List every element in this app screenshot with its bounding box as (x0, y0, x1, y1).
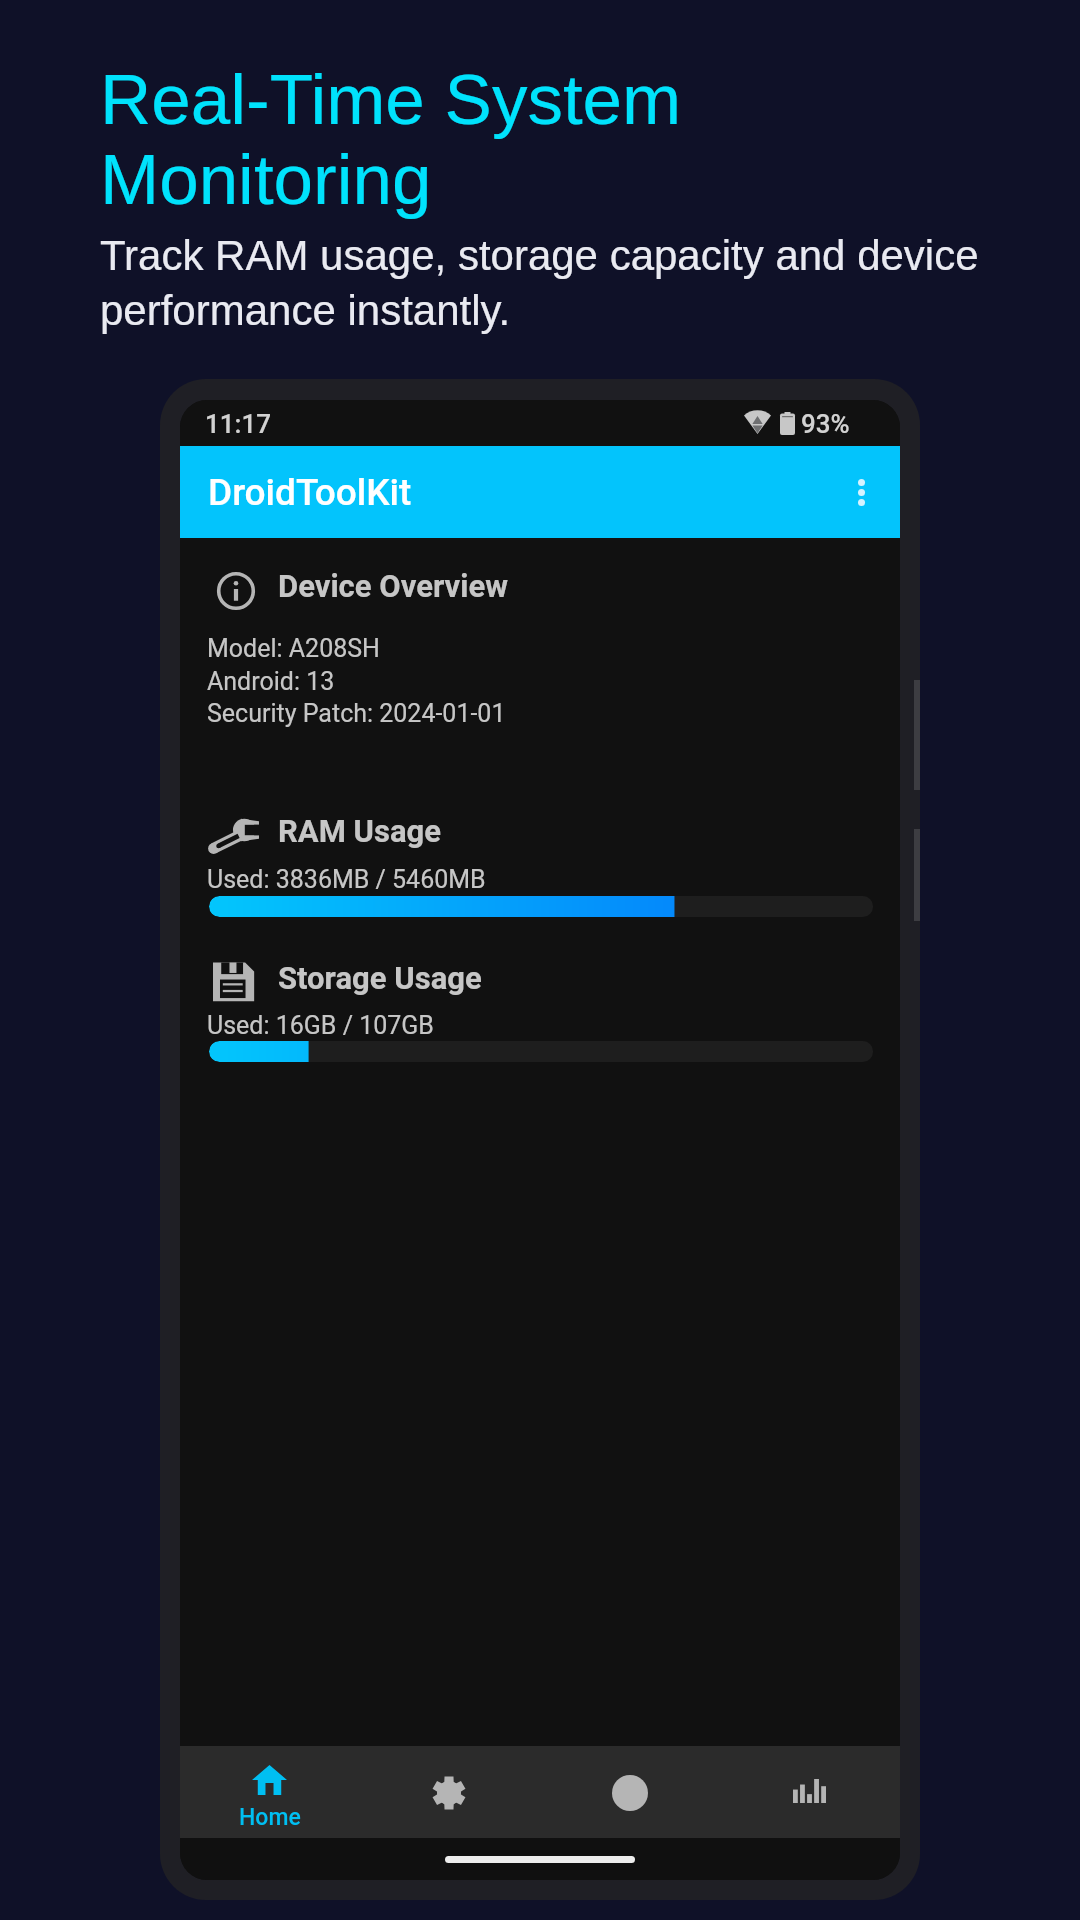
staticText: Device Overview (278, 568, 508, 604)
staticText: 93% (801, 409, 850, 439)
staticText: RAM Usage (278, 813, 441, 849)
staticText: Monitoring (100, 140, 432, 219)
staticText: Storage Usage (278, 960, 482, 996)
button[interactable]: Battery (540, 1746, 720, 1838)
staticText: Model: A208SH Android: 13 Security Patch… (207, 634, 506, 728)
staticText: performance instantly. (100, 287, 511, 334)
button[interactable]: Statistics (720, 1746, 900, 1838)
staticText: Real-Time System (100, 60, 682, 139)
staticText: Used: 16GB / 107GB (207, 1011, 434, 1040)
button[interactable]: Settings (360, 1746, 540, 1838)
staticText: Used: 3836MB / 5460MB (207, 865, 486, 894)
staticText: DroidToolKit (208, 471, 412, 514)
staticText: Home (239, 1804, 301, 1831)
staticText: 11:17 (205, 409, 272, 439)
button[interactable]: More options (833, 464, 889, 520)
staticText: Track RAM usage, storage capacity and de… (100, 232, 979, 279)
button[interactable] (180, 1746, 360, 1838)
